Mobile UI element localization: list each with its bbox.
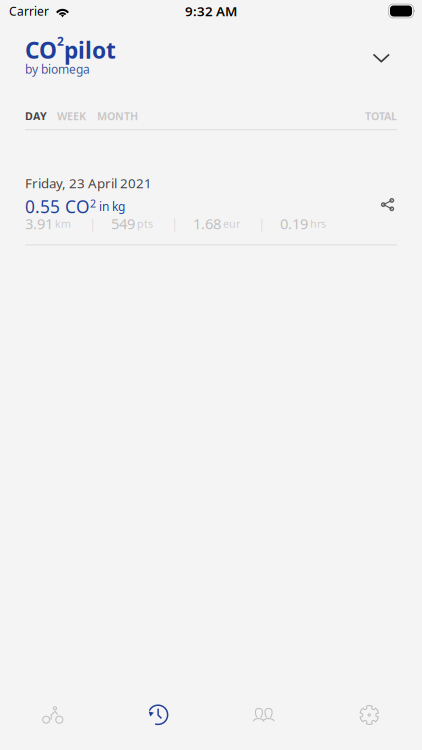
button[interactable]: Friends [211, 689, 316, 741]
staticText: 0.19 [280, 214, 308, 233]
button[interactable]: WEEK [57, 105, 86, 127]
staticText: Friday, 23 April 2021 [25, 174, 152, 192]
staticText: Carrier [9, 3, 49, 19]
staticText: CO [25, 35, 57, 65]
button[interactable]: MONTH [97, 105, 138, 127]
button[interactable]: TOTAL [365, 105, 397, 127]
staticText: 0.55 CO [25, 195, 90, 218]
staticText: in kg [99, 198, 125, 214]
staticText: 1.68 [193, 214, 221, 233]
staticText: hrs [310, 217, 326, 231]
button[interactable]: Share [370, 177, 405, 215]
staticText: 9:32 AM [185, 2, 237, 20]
staticText: pilot [64, 35, 116, 65]
staticText: pts [137, 217, 153, 231]
button[interactable]: Show menu [359, 37, 404, 74]
button[interactable]: DAY [25, 105, 47, 127]
staticText: 2 [90, 196, 96, 210]
staticText: MONTH [97, 109, 138, 123]
staticText: 3.91 [25, 214, 53, 233]
staticText: eur [223, 217, 240, 231]
staticText: by biomega [25, 61, 90, 77]
button[interactable]: Settings [316, 689, 422, 741]
staticText: 2 [57, 33, 64, 49]
staticText: WEEK [57, 109, 86, 123]
staticText: 549 [111, 214, 135, 233]
staticText: km [55, 217, 71, 231]
staticText: TOTAL [365, 109, 397, 123]
staticText: | [258, 215, 265, 232]
staticText: DAY [25, 109, 47, 123]
button[interactable]: History [105, 689, 211, 741]
button[interactable]: Rides [0, 689, 105, 741]
staticText: | [89, 215, 96, 232]
staticText: | [171, 215, 178, 232]
